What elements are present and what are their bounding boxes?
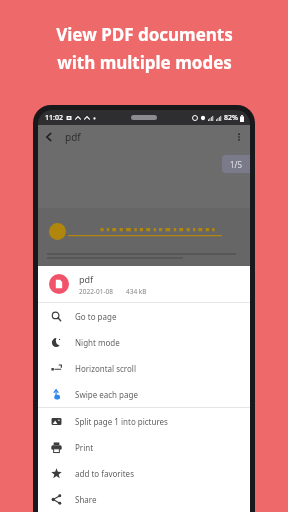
staticText: 434 kB (126, 287, 147, 296)
staticText: Horizontal scroll (75, 363, 136, 374)
button[interactable]: Share (38, 486, 250, 512)
staticText: Share (75, 494, 97, 505)
button[interactable]: Go to page (38, 303, 250, 329)
button[interactable]: Horizontal scroll (38, 355, 250, 381)
staticText: pdf (79, 273, 94, 285)
button[interactable]: Back (38, 126, 60, 148)
staticText: Night mode (75, 337, 120, 348)
button[interactable]: add to favorites (38, 460, 250, 486)
button[interactable]: Print (38, 434, 250, 460)
button[interactable]: pdf (38, 266, 250, 302)
staticText: Print (75, 442, 94, 453)
button[interactable]: Swipe each page (38, 381, 250, 407)
staticText: Split page 1 into pictures (75, 416, 168, 427)
staticText: with multiple modes (57, 51, 232, 74)
staticText: View PDF documents (56, 23, 233, 46)
staticText: pdf (65, 130, 81, 144)
button[interactable]: Split page 1 into pictures (38, 408, 250, 434)
button[interactable]: More options (228, 126, 250, 148)
staticText: 11:02 (45, 113, 63, 123)
staticText: 1/5 (230, 159, 243, 170)
staticText: Swipe each page (75, 389, 138, 400)
staticText: Go to page (75, 311, 117, 322)
staticText: 82% (224, 113, 238, 123)
staticText: add to favorites (75, 468, 134, 479)
button[interactable]: Night mode (38, 329, 250, 355)
button[interactable]: 1/5 (222, 155, 250, 173)
staticText: 2022-01-08 (79, 287, 113, 296)
